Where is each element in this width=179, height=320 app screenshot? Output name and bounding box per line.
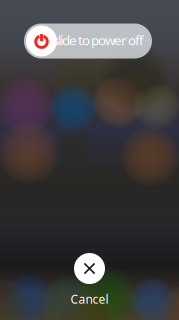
button[interactable]: slide to power off — [24, 23, 152, 58]
button[interactable]: Cancel — [70, 253, 108, 307]
staticText: slide to power off — [53, 31, 144, 49]
staticText: Cancel — [70, 291, 108, 307]
